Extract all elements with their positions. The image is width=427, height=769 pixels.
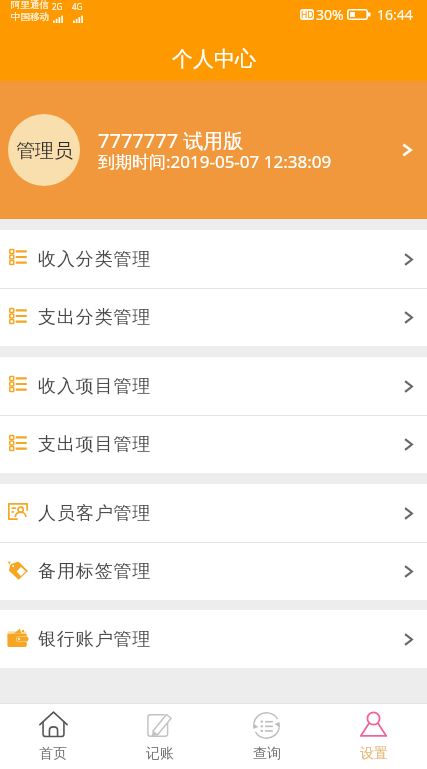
button[interactable]: 收入项目管理 — [0, 357, 427, 415]
other: Account details — [402, 142, 412, 158]
button[interactable]: 管理员 — [0, 81, 427, 219]
staticText: 个人中心 — [172, 46, 256, 72]
staticText: 收入项目管理 — [38, 375, 152, 398]
staticText: 设置 — [360, 745, 388, 763]
button[interactable]: 记账 — [106, 704, 213, 769]
staticText: 支出项目管理 — [38, 433, 152, 456]
button[interactable]: 人员客户管理 — [0, 484, 427, 542]
staticText: 阿里通信 — [11, 0, 49, 11]
staticText: 首页 — [39, 745, 67, 763]
staticText: 支出分类管理 — [38, 306, 152, 329]
staticText: 备用标签管理 — [38, 560, 152, 583]
button[interactable]: 设置 — [320, 704, 427, 769]
staticText: 银行账户管理 — [38, 628, 152, 651]
staticText: 人员客户管理 — [38, 502, 152, 525]
staticText: 到期时间:2019-05-07 12:38:09 — [98, 150, 332, 173]
staticText: 16:44 — [377, 5, 413, 24]
staticText: 7777777 试用版 — [98, 127, 244, 154]
staticText: 4G — [72, 1, 83, 12]
staticText: 查询 — [253, 745, 281, 763]
staticText: 30% — [316, 5, 344, 24]
staticText: 记账 — [146, 745, 174, 763]
button[interactable]: 银行账户管理 — [0, 610, 427, 668]
staticText: 收入分类管理 — [38, 248, 152, 271]
staticText: HD — [301, 9, 314, 20]
button[interactable]: 查询 — [213, 704, 320, 769]
staticText: 中国移动 — [11, 11, 49, 23]
button[interactable]: 首页 — [0, 704, 106, 769]
staticText: 2G — [52, 1, 63, 12]
button[interactable]: 支出分类管理 — [0, 289, 427, 346]
button[interactable]: 备用标签管理 — [0, 543, 427, 600]
button[interactable]: 收入分类管理 — [0, 230, 427, 288]
button[interactable]: 支出项目管理 — [0, 416, 427, 473]
staticText: 管理员 — [16, 139, 73, 163]
